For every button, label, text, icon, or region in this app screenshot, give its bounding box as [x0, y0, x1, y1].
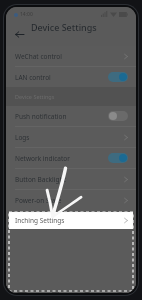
- button[interactable]: Power-on State: [6, 190, 136, 210]
- button[interactable]: LAN control: [6, 67, 136, 87]
- button[interactable]: Toggle on: [108, 72, 128, 82]
- staticText: Network indicator: [15, 154, 70, 163]
- staticText: Logs: [15, 133, 30, 142]
- button[interactable]: Button Backlight: [6, 169, 136, 189]
- staticText: Power-on State: [15, 196, 62, 205]
- staticText: WeChat control: [15, 52, 62, 61]
- button[interactable]: Logs: [6, 127, 136, 147]
- button[interactable]: Network indicator: [6, 148, 136, 168]
- button[interactable]: Back: [10, 25, 28, 43]
- button[interactable]: WeChat control: [6, 46, 136, 66]
- button[interactable]: Inching Settings: [9, 212, 133, 229]
- staticText: Push notification: [15, 112, 67, 121]
- button[interactable]: Toggle on: [108, 153, 128, 163]
- staticText: Device Settings: [31, 21, 97, 33]
- staticText: LAN control: [15, 73, 51, 82]
- button[interactable]: Toggle off: [108, 111, 128, 121]
- staticText: Inching Settings: [15, 216, 65, 225]
- staticText: Device Settings: [15, 93, 55, 100]
- button[interactable]: Push notification: [6, 106, 136, 126]
- staticText: Button Backlight: [15, 175, 66, 184]
- staticText: 14:00: [20, 11, 33, 18]
